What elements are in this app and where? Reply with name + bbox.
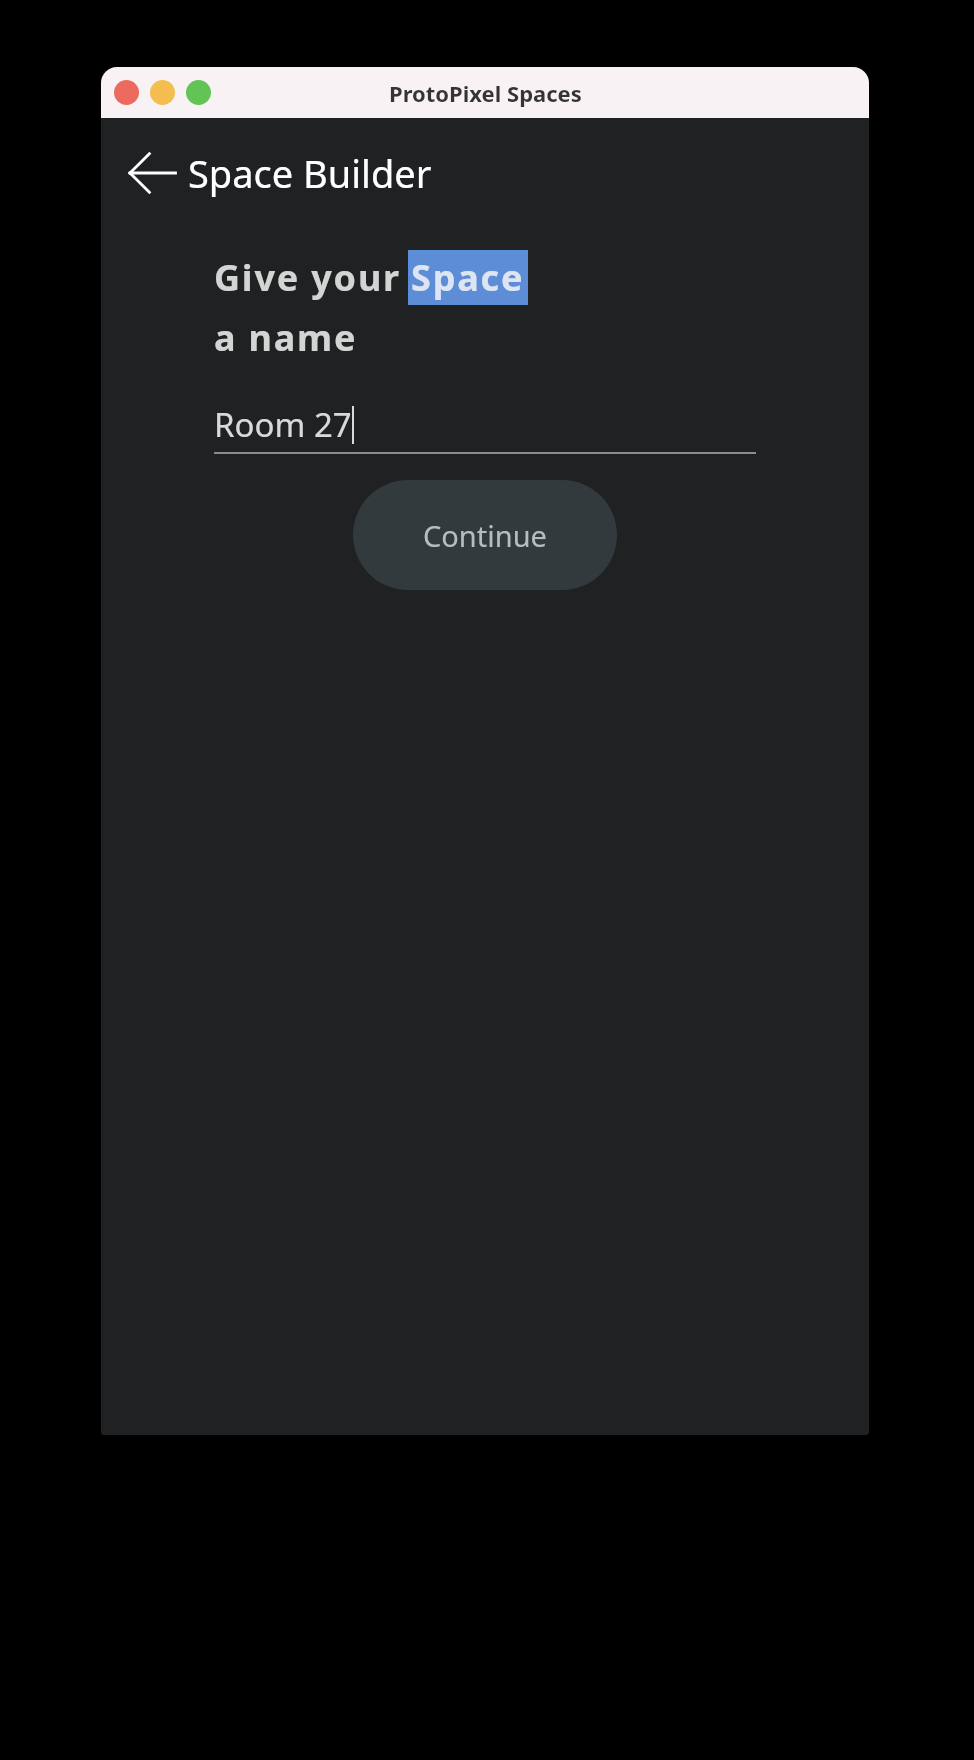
staticText: ProtoPixel Spaces bbox=[389, 78, 582, 108]
button[interactable]: Continue bbox=[353, 480, 617, 590]
button[interactable]: Close window bbox=[114, 80, 139, 105]
button[interactable]: Back bbox=[119, 140, 185, 206]
button[interactable]: Minimize window bbox=[150, 80, 175, 105]
staticText: Space Builder bbox=[188, 147, 432, 199]
button[interactable]: Room 27 bbox=[214, 396, 756, 452]
staticText: a name bbox=[214, 313, 358, 362]
staticText: Space bbox=[411, 253, 525, 302]
staticText: Give your bbox=[214, 253, 401, 302]
button[interactable]: Maximize window bbox=[186, 80, 211, 105]
staticText: Continue bbox=[423, 516, 547, 555]
staticText: Room 27 bbox=[214, 402, 352, 447]
